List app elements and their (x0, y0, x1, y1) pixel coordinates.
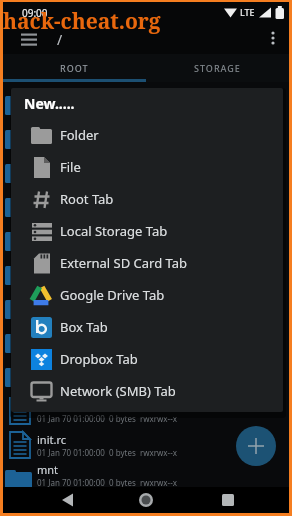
staticText: cache (37, 126, 67, 141)
staticText: 01 Jan 70 01:00:00 0 bytes rwxrwx--x (37, 141, 177, 152)
staticText: mnt (37, 462, 59, 477)
button[interactable]: ROOT (3, 54, 146, 82)
staticText: 01 Jan 70 01:00:00 0 bytes rwxrwx--x (37, 477, 177, 487)
button[interactable]: File (11, 151, 283, 183)
staticText: 01 Jan 70 01:00:00 0 bytes rwxrwx--x (37, 413, 177, 424)
button[interactable]: dev (3, 258, 289, 292)
button[interactable]: External SD Card Tab (11, 247, 283, 279)
staticText: Local Storage Tab (60, 222, 168, 240)
staticText: ROOT (60, 62, 89, 74)
button[interactable]: Folder (11, 119, 283, 151)
button[interactable] (259, 26, 287, 52)
staticText: 01 Jan 70 01:00:00 0 bytes rwxrwx--x (37, 277, 177, 288)
staticText: LTE (240, 6, 255, 18)
staticText: 01 Jan 70 01:00:00 0 bytes rwxrwx--x (37, 243, 177, 254)
staticText: / (57, 30, 63, 49)
button[interactable]: mnt (3, 462, 289, 487)
button[interactable]: Dropbox Tab (11, 343, 283, 375)
staticText: 01 Jan 70 01:00:00 0 bytes rwxrwx--x (37, 175, 177, 186)
button[interactable]: data (3, 224, 289, 258)
button[interactable]: cache (3, 122, 289, 156)
button[interactable] (236, 426, 276, 466)
staticText: d (37, 194, 44, 209)
staticText: init.rc (37, 432, 66, 447)
staticText: 01 Jan 70 01:00:00 0 bytes rwxrwx--x (37, 311, 177, 322)
staticText: default.prop (37, 330, 101, 345)
button[interactable] (3, 487, 99, 513)
staticText: 01 Jan 70 01:00:00 0 bytes rwxrwx--x (37, 379, 177, 390)
button[interactable]: Google Drive Tab (11, 279, 283, 311)
staticText: init (37, 364, 54, 379)
staticText: STORAGE (194, 62, 241, 74)
staticText: hack-cheat.org (3, 7, 161, 36)
button[interactable]: Root Tab (11, 183, 283, 215)
button[interactable] (13, 28, 45, 52)
staticText: 01 Jan 70 01:00:00 0 bytes rwxrwx--x (37, 345, 177, 356)
button[interactable]: default.prop (3, 326, 289, 360)
button[interactable]: init.environ.rc (3, 394, 289, 428)
staticText: acct (37, 92, 58, 107)
button[interactable]: Network (SMB) Tab (11, 375, 283, 407)
button[interactable]: init.rc (3, 428, 289, 462)
button[interactable]: d (3, 190, 289, 224)
staticText: Network (SMB) Tab (60, 382, 176, 400)
staticText: data (37, 228, 61, 243)
staticText: Root Tab (60, 190, 114, 208)
staticText: Box Tab (60, 318, 108, 336)
staticText: dev (37, 262, 56, 277)
button[interactable] (99, 487, 194, 513)
staticText: 01 Jan 70 01:00:00 0 bytes rwxrwx--x (37, 447, 177, 458)
staticText: New..... (24, 94, 75, 113)
staticText: Dropbox Tab (60, 350, 138, 368)
staticText: Google Drive Tab (60, 286, 165, 304)
staticText: config (37, 160, 70, 175)
button[interactable]: Box Tab (11, 311, 283, 343)
staticText: init.environ.rc (37, 398, 109, 413)
staticText: etc (37, 296, 53, 311)
staticText: File (60, 158, 81, 176)
staticText: 09:00 (22, 6, 48, 20)
button[interactable]: config (3, 156, 289, 190)
button[interactable] (194, 487, 289, 513)
button[interactable]: etc (3, 292, 289, 326)
staticText: Folder (60, 126, 99, 144)
staticText: 01 Jan 70 01:00:00 0 bytes rwxrwx--x (37, 107, 177, 118)
button[interactable]: STORAGE (146, 54, 289, 82)
button[interactable]: acct (3, 88, 289, 122)
button[interactable]: Local Storage Tab (11, 215, 283, 247)
staticText: External SD Card Tab (60, 254, 188, 272)
button[interactable]: init (3, 360, 289, 394)
